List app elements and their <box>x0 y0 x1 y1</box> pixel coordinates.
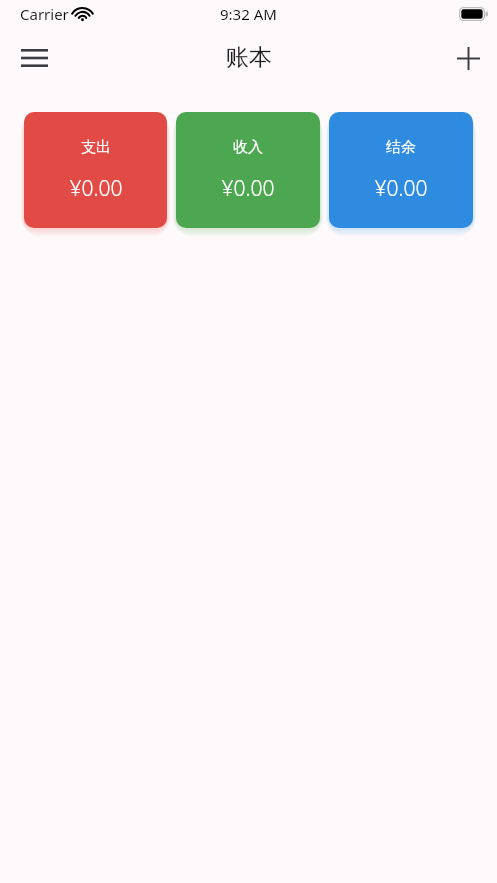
staticText: 账本 <box>226 43 272 72</box>
staticText: 结余 <box>386 138 416 157</box>
staticText: ¥0.00 <box>221 174 275 203</box>
staticText: 支出 <box>81 138 111 157</box>
staticText: 9:32 AM <box>220 4 277 24</box>
staticText: Carrier <box>20 4 69 24</box>
staticText: ¥0.00 <box>69 174 123 203</box>
staticText: ¥0.00 <box>374 174 428 203</box>
button[interactable]: Add <box>444 34 492 82</box>
button[interactable]: 支出 <box>24 112 167 228</box>
button[interactable]: 结余 <box>329 112 473 228</box>
staticText: 收入 <box>233 138 263 157</box>
button[interactable]: 收入 <box>176 112 320 228</box>
button[interactable]: Menu <box>10 34 58 82</box>
